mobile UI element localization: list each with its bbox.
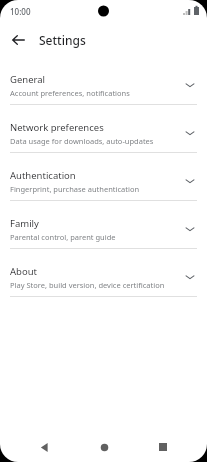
button[interactable]: Back	[6, 28, 30, 52]
button[interactable]: Network preferences	[0, 114, 207, 162]
button[interactable]: Recents	[148, 432, 178, 462]
staticText: General	[10, 73, 46, 86]
staticText: Play Store, build version, device certif…	[10, 280, 165, 290]
button[interactable]: Authentication	[0, 162, 207, 210]
button[interactable]: General	[0, 66, 207, 114]
staticText: Settings	[39, 32, 86, 48]
staticText: Family	[10, 217, 39, 230]
staticText: Network preferences	[10, 121, 104, 134]
staticText: Fingerprint, purchase authentication	[10, 184, 140, 194]
button[interactable]: Back	[29, 432, 59, 462]
staticText: 10:00	[10, 6, 31, 17]
staticText: Data usage for downloads, auto-updates	[10, 136, 154, 146]
button[interactable]: Home	[89, 432, 119, 462]
staticText: Account preferences, notifications	[10, 88, 130, 98]
staticText: Authentication	[10, 169, 76, 182]
button[interactable]: Family	[0, 210, 207, 258]
button[interactable]: About	[0, 258, 207, 306]
staticText: Parental control, parent guide	[10, 232, 116, 242]
staticText: About	[10, 265, 37, 278]
